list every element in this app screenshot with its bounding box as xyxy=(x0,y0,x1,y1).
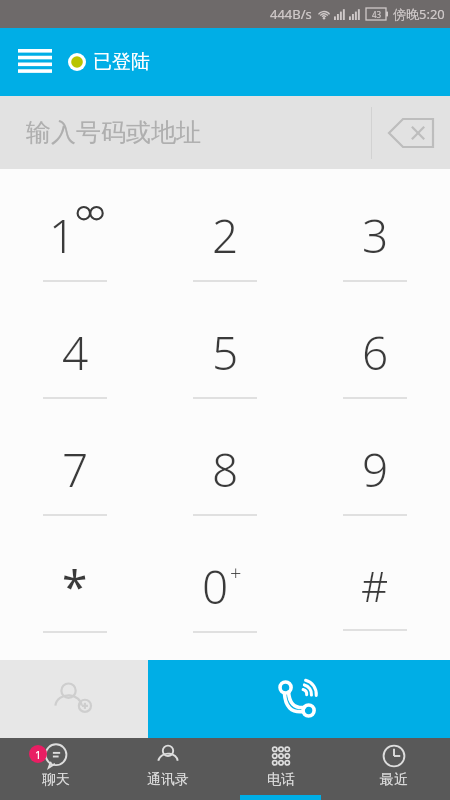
staticText: 1 xyxy=(49,204,76,267)
staticText: * xyxy=(62,555,88,618)
staticText: 通讯录 xyxy=(147,771,189,789)
staticText: 4 xyxy=(62,321,89,384)
staticText: # xyxy=(361,557,389,614)
button[interactable]: Call xyxy=(148,660,450,738)
button[interactable]: 4 xyxy=(0,299,150,416)
button[interactable]: 0 xyxy=(150,533,300,650)
button[interactable]: Menu xyxy=(10,37,60,87)
button[interactable]: # xyxy=(300,533,450,650)
staticText: 43 xyxy=(372,9,382,20)
button[interactable]: 7 xyxy=(0,416,150,533)
button[interactable]: * xyxy=(0,533,150,650)
staticText: 8 xyxy=(212,438,239,501)
staticText: 傍晚5:20 xyxy=(393,5,445,23)
staticText: 3 xyxy=(362,204,389,267)
staticText: 9 xyxy=(362,438,389,501)
staticText: 电话 xyxy=(267,771,295,789)
staticText: 444B/s xyxy=(270,5,312,23)
button[interactable]: 1 xyxy=(0,183,150,299)
button[interactable]: 最近 xyxy=(337,738,450,800)
staticText: 1 xyxy=(35,747,42,762)
button[interactable]: 9 xyxy=(300,416,450,533)
button[interactable]: 电话 xyxy=(224,738,337,800)
button[interactable]: 已登陆 xyxy=(68,50,150,74)
staticText: 6 xyxy=(362,321,389,384)
button[interactable]: 8 xyxy=(150,416,300,533)
button[interactable]: 6 xyxy=(300,299,450,416)
button[interactable]: Backspace xyxy=(372,96,450,169)
button[interactable]: 通讯录 xyxy=(112,738,224,800)
staticText: 0 xyxy=(202,555,229,618)
staticText: 5 xyxy=(212,321,239,384)
staticText: 2 xyxy=(212,204,239,267)
button[interactable]: 2 xyxy=(150,183,300,299)
staticText: 7 xyxy=(62,438,89,501)
staticText: + xyxy=(230,559,242,586)
staticText: 已登陆 xyxy=(93,50,150,74)
button[interactable]: 5 xyxy=(150,299,300,416)
button[interactable]: 1 xyxy=(0,738,112,800)
staticText: 输入号码或地址 xyxy=(26,117,201,148)
button[interactable]: 3 xyxy=(300,183,450,299)
button[interactable]: Add contact xyxy=(0,660,148,738)
staticText: 最近 xyxy=(380,771,408,789)
staticText: 聊天 xyxy=(42,771,70,789)
